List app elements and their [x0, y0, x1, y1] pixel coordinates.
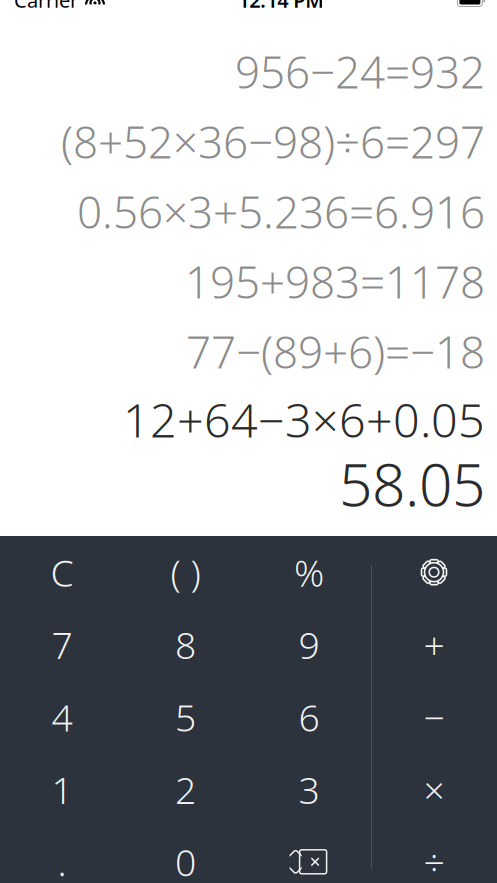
- button[interactable]: ×: [371, 753, 497, 826]
- staticText: 8: [175, 620, 196, 669]
- button[interactable]: Backspace: [247, 826, 371, 883]
- staticText: %: [294, 547, 324, 597]
- staticText: ×: [423, 765, 444, 814]
- staticText: 1: [51, 765, 72, 814]
- button[interactable]: ÷: [371, 826, 497, 883]
- button[interactable]: C: [0, 536, 124, 608]
- button[interactable]: 7: [0, 608, 124, 681]
- staticText: 2: [175, 765, 196, 814]
- staticText: −: [423, 692, 444, 742]
- staticText: 5: [175, 692, 196, 742]
- staticText: 9: [299, 620, 320, 669]
- staticText: 0: [175, 837, 196, 883]
- staticText: C: [50, 547, 73, 597]
- staticText: 956−24=932: [235, 42, 485, 101]
- staticText: 12+64−3×6+0.05: [123, 388, 485, 450]
- button[interactable]: 4: [0, 681, 124, 753]
- button[interactable]: 6: [247, 681, 371, 753]
- staticText: +: [423, 620, 444, 669]
- button[interactable]: 0: [124, 826, 247, 883]
- staticText: Carrier: [14, 0, 78, 13]
- button[interactable]: −: [371, 681, 497, 753]
- button[interactable]: %: [247, 536, 371, 608]
- staticText: 0.56×3+5.236=6.916: [77, 182, 485, 241]
- staticText: 7: [51, 620, 72, 669]
- button[interactable]: [371, 536, 497, 608]
- button[interactable]: 1: [0, 753, 124, 826]
- staticText: 4: [51, 692, 72, 742]
- staticText: 3: [299, 765, 320, 814]
- staticText: ( ): [170, 547, 200, 597]
- staticText: (8+52×36−98)÷6=297: [61, 112, 485, 171]
- button[interactable]: 9: [247, 608, 371, 681]
- staticText: 58.05: [339, 444, 485, 522]
- button[interactable]: 5: [124, 681, 247, 753]
- button[interactable]: .: [0, 826, 124, 883]
- button[interactable]: ( ): [124, 536, 247, 608]
- staticText: 6: [299, 692, 320, 742]
- staticText: .: [57, 837, 66, 883]
- staticText: ÷: [423, 837, 444, 883]
- button[interactable]: 3: [247, 753, 371, 826]
- staticText: 77−(89+6)=−18: [186, 322, 485, 381]
- staticText: 195+983=1178: [185, 252, 485, 311]
- button[interactable]: 8: [124, 608, 247, 681]
- button[interactable]: 2: [124, 753, 247, 826]
- button[interactable]: +: [371, 608, 497, 681]
- staticText: 12:14 PM: [238, 0, 324, 13]
